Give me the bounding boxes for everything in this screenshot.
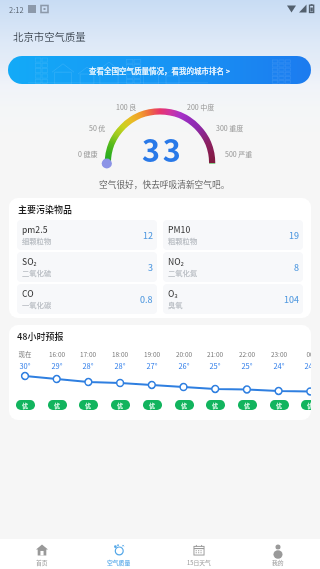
- staticText: 0 健康: [78, 149, 98, 159]
- staticText: 空气很好，快去呼吸清新空气吧。: [99, 178, 230, 191]
- staticText: 28°: [104, 360, 136, 371]
- staticText: 3: [148, 261, 153, 274]
- button[interactable]: 现在: [9, 349, 41, 417]
- button[interactable]: 21:00: [199, 349, 231, 417]
- button[interactable]: O₃: [163, 284, 303, 314]
- staticText: 25°: [231, 360, 263, 371]
- staticText: 优: [181, 401, 188, 410]
- button[interactable]: 17:00: [72, 349, 104, 417]
- button[interactable]: 23:00: [263, 349, 295, 417]
- staticText: 优: [307, 401, 311, 410]
- staticText: 22:00: [231, 349, 263, 358]
- staticText: 二氧化硫: [22, 268, 52, 279]
- staticText: 29°: [41, 360, 73, 371]
- staticText: 21:00: [199, 349, 231, 358]
- staticText: 50 优: [89, 123, 106, 133]
- staticText: 500 严重: [225, 149, 253, 159]
- button[interactable]: pm2.5: [17, 220, 157, 250]
- staticText: NO₂: [168, 255, 184, 267]
- staticText: pm2.5: [22, 223, 48, 235]
- button[interactable]: 00: [294, 349, 311, 417]
- staticText: 23:00: [263, 349, 295, 358]
- staticText: 33: [142, 127, 184, 171]
- staticText: 查看全国空气质量情况，看我的城市排名 >: [89, 65, 230, 76]
- button[interactable]: CO: [17, 284, 157, 314]
- button[interactable]: 查看全国空气质量情况，看我的城市排名 >: [8, 56, 311, 84]
- button[interactable]: 我的: [254, 539, 302, 569]
- staticText: 00: [294, 349, 311, 358]
- staticText: 优: [149, 401, 156, 410]
- staticText: O₃: [168, 287, 178, 299]
- staticText: 17:00: [72, 349, 104, 358]
- staticText: 优: [22, 401, 29, 410]
- staticText: 首页: [36, 558, 48, 566]
- staticText: 优: [276, 401, 283, 410]
- button[interactable]: 18:00: [104, 349, 136, 417]
- staticText: 我的: [272, 558, 284, 566]
- button[interactable]: NO₂: [163, 252, 303, 282]
- staticText: 优: [117, 401, 124, 410]
- staticText: 优: [54, 401, 61, 410]
- staticText: 19: [289, 229, 299, 242]
- button[interactable]: SO₂: [17, 252, 157, 282]
- staticText: 100 良: [116, 102, 137, 112]
- staticText: 细颗粒物: [22, 236, 52, 247]
- staticText: 27°: [136, 360, 168, 371]
- staticText: 48小时预报: [17, 330, 64, 343]
- staticText: PM10: [168, 223, 191, 235]
- staticText: 2:12: [9, 4, 24, 15]
- staticText: 8: [294, 261, 299, 274]
- staticText: 24°: [294, 360, 311, 371]
- staticText: 18:00: [104, 349, 136, 358]
- staticText: 30°: [9, 360, 41, 371]
- staticText: SO₂: [22, 255, 37, 267]
- staticText: 优: [85, 401, 92, 410]
- staticText: 优: [244, 401, 251, 410]
- staticText: 300 重度: [216, 123, 244, 133]
- staticText: 104: [284, 293, 299, 306]
- staticText: 12: [143, 229, 153, 242]
- button[interactable]: 空气质量: [95, 539, 143, 569]
- button[interactable]: 20:00: [168, 349, 200, 417]
- staticText: 北京市空气质量: [13, 29, 86, 44]
- staticText: 19:00: [136, 349, 168, 358]
- staticText: 200 中度: [187, 102, 215, 112]
- button[interactable]: 首页: [18, 539, 66, 569]
- staticText: 二氧化氮: [168, 268, 198, 279]
- staticText: 主要污染物品: [18, 203, 73, 216]
- staticText: 优: [212, 401, 219, 410]
- staticText: 一氧化碳: [22, 300, 52, 311]
- button[interactable]: 22:00: [231, 349, 263, 417]
- button[interactable]: 16:00: [41, 349, 73, 417]
- button[interactable]: PM10: [163, 220, 303, 250]
- staticText: 26°: [168, 360, 200, 371]
- staticText: 臭氧: [168, 300, 183, 311]
- staticText: 25°: [199, 360, 231, 371]
- staticText: 16:00: [41, 349, 73, 358]
- staticText: CO: [22, 287, 34, 299]
- staticText: 0.8: [140, 293, 153, 306]
- staticText: 粗颗粒物: [168, 236, 198, 247]
- staticText: 24°: [263, 360, 295, 371]
- staticText: 现在: [9, 349, 41, 358]
- staticText: 空气质量: [107, 558, 131, 566]
- button[interactable]: 19:00: [136, 349, 168, 417]
- button[interactable]: 15日天气: [175, 539, 223, 569]
- staticText: 15日天气: [187, 558, 211, 566]
- staticText: 28°: [72, 360, 104, 371]
- staticText: 20:00: [168, 349, 200, 358]
